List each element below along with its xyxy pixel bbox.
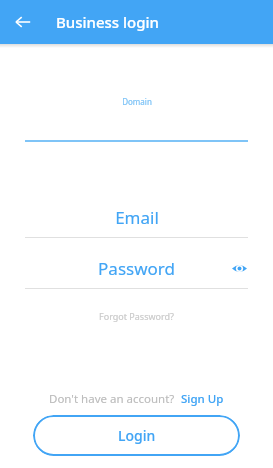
staticText: Login <box>118 426 156 445</box>
staticText: Password <box>98 257 175 280</box>
button[interactable]: Back <box>10 9 36 35</box>
button[interactable]: Password <box>0 256 273 280</box>
staticText: Email <box>115 206 159 229</box>
button[interactable]: Email <box>0 206 273 238</box>
staticText: Business login <box>56 12 160 32</box>
staticText: Forgot Password? <box>99 310 174 322</box>
staticText: Don't have an account? <box>49 391 175 407</box>
button[interactable]: Sign Up <box>181 391 224 407</box>
staticText: Sign Up <box>181 391 224 407</box>
staticText: Domain <box>122 96 152 107</box>
button[interactable]: Login <box>33 415 240 456</box>
button[interactable]: Forgot Password? <box>95 306 178 326</box>
button[interactable]: Show password <box>227 256 251 280</box>
button[interactable]: Domain <box>0 96 273 142</box>
